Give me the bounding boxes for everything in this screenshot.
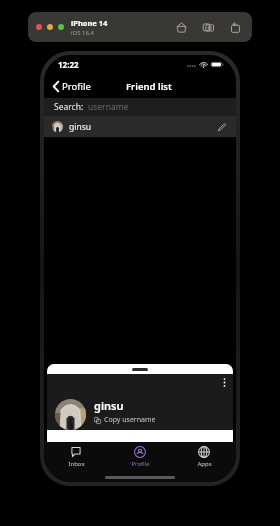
button[interactable]: Profile xyxy=(50,78,94,95)
staticText: Search: xyxy=(54,101,84,113)
button[interactable]: Zoom xyxy=(58,24,64,30)
button[interactable]: Rotate xyxy=(228,20,242,34)
staticText: iOS 16.4 xyxy=(71,29,94,37)
staticText: Profile xyxy=(62,80,91,93)
button[interactable]: Apps xyxy=(172,442,236,472)
button[interactable]: Copy username xyxy=(94,415,156,425)
button[interactable]: Home xyxy=(174,20,188,34)
button[interactable]: Close xyxy=(36,24,42,30)
staticText: 12:22 xyxy=(58,59,79,70)
button[interactable]: Profile xyxy=(108,442,172,472)
button[interactable]: More options xyxy=(218,376,230,388)
staticText: ginsu xyxy=(94,398,124,413)
button[interactable]: Edit friend xyxy=(215,120,228,133)
staticText: Friend list xyxy=(126,80,172,93)
staticText: ginsu xyxy=(69,121,91,133)
staticText: Copy username xyxy=(104,415,156,425)
button[interactable]: Search: xyxy=(44,98,236,116)
button[interactable]: ginsu xyxy=(44,116,236,137)
button[interactable]: Minimise xyxy=(47,24,53,30)
button[interactable]: Inbox xyxy=(44,442,108,472)
staticText: Apps xyxy=(197,460,212,468)
button[interactable] xyxy=(47,364,233,374)
button[interactable]: Profile photo xyxy=(55,399,86,430)
staticText: Profile xyxy=(131,460,150,468)
button[interactable]: Screenshot xyxy=(201,20,215,34)
staticText: username xyxy=(88,101,129,113)
staticText: iPhone 14 xyxy=(71,18,108,28)
staticText: Inbox xyxy=(68,460,85,468)
